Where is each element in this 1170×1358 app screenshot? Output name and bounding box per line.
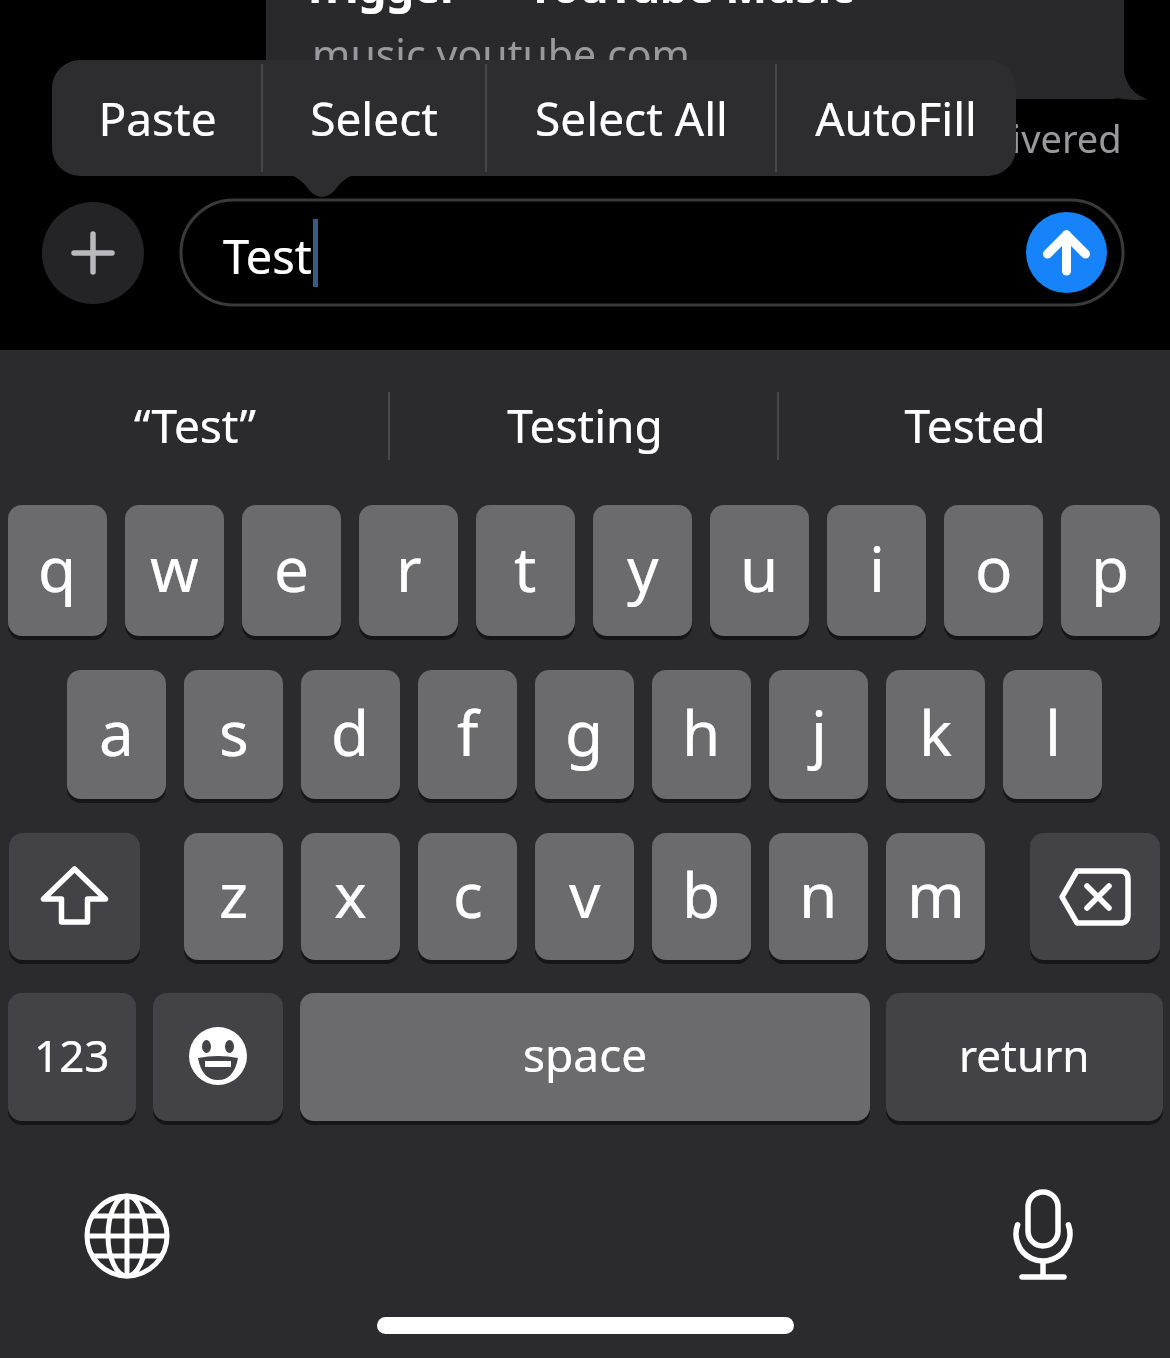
- button[interactable]: Select All: [486, 60, 776, 176]
- staticText: s: [219, 690, 249, 774]
- staticText: Paste: [98, 87, 217, 150]
- staticText: Tested: [904, 394, 1046, 457]
- staticText: w: [150, 526, 199, 610]
- button[interactable]: z: [184, 833, 283, 961]
- button[interactable]: AutoFill: [776, 60, 1016, 176]
- button[interactable]: “Test”: [40, 389, 350, 461]
- button[interactable]: v: [535, 833, 634, 961]
- staticText: d: [331, 690, 370, 774]
- staticText: Test: [223, 224, 312, 288]
- button[interactable]: o: [944, 505, 1043, 637]
- button[interactable]: j: [769, 670, 868, 800]
- button[interactable]: [1030, 833, 1160, 961]
- button[interactable]: d: [301, 670, 400, 800]
- button[interactable]: t: [476, 505, 575, 637]
- button[interactable]: Paste: [52, 60, 262, 176]
- button[interactable]: [77, 1186, 177, 1286]
- staticText: v: [569, 852, 601, 936]
- button[interactable]: [153, 993, 283, 1122]
- button[interactable]: Select: [262, 60, 486, 176]
- button[interactable]: a: [67, 670, 166, 800]
- button[interactable]: c: [418, 833, 517, 961]
- staticText: k: [919, 690, 953, 774]
- button[interactable]: p: [1061, 505, 1160, 637]
- staticText: Select All: [535, 87, 728, 150]
- staticText: t: [514, 526, 537, 610]
- staticText: h: [682, 690, 721, 774]
- button[interactable]: n: [769, 833, 868, 961]
- button[interactable]: h: [652, 670, 751, 800]
- staticText: Delivered: [952, 112, 1122, 158]
- staticText: space: [523, 1023, 648, 1086]
- button[interactable]: e: [242, 505, 341, 637]
- button[interactable]: w: [125, 505, 224, 637]
- staticText: e: [274, 526, 309, 610]
- button[interactable]: s: [184, 670, 283, 800]
- button[interactable]: Testing: [430, 389, 740, 461]
- staticText: x: [334, 852, 367, 936]
- staticText: b: [682, 852, 721, 936]
- staticText: Select: [310, 87, 438, 150]
- button[interactable]: space: [300, 993, 870, 1122]
- button[interactable]: b: [652, 833, 751, 961]
- staticText: n: [799, 852, 838, 936]
- button[interactable]: Tested: [820, 389, 1130, 461]
- staticText: AutoFill: [815, 87, 977, 150]
- staticText: g: [565, 690, 604, 774]
- staticText: r: [396, 526, 422, 610]
- staticText: m: [907, 852, 965, 936]
- button[interactable]: Test: [181, 200, 1123, 305]
- button[interactable]: [9, 833, 140, 961]
- staticText: “Test”: [134, 394, 256, 457]
- button[interactable]: [42, 202, 144, 304]
- button[interactable]: return: [886, 993, 1163, 1122]
- button[interactable]: m: [886, 833, 985, 961]
- button[interactable]: g: [535, 670, 634, 800]
- staticText: return: [959, 1025, 1090, 1085]
- button[interactable]: [1026, 212, 1107, 293]
- staticText: c: [453, 852, 483, 936]
- staticText: l: [1045, 690, 1061, 774]
- button[interactable]: i: [827, 505, 926, 637]
- staticText: a: [99, 690, 134, 774]
- button[interactable]: y: [593, 505, 692, 637]
- staticText: f: [457, 690, 479, 774]
- staticText: j: [811, 690, 827, 774]
- button[interactable]: u: [710, 505, 809, 637]
- staticText: Trigger — YouTube Music: [302, 0, 854, 14]
- staticText: o: [975, 526, 1013, 610]
- staticText: Testing: [507, 394, 663, 457]
- staticText: music.youtube.com: [312, 26, 690, 78]
- button[interactable]: k: [886, 670, 985, 800]
- button[interactable]: q: [8, 505, 107, 637]
- button[interactable]: f: [418, 670, 517, 800]
- staticText: z: [219, 852, 249, 936]
- staticText: i: [869, 526, 885, 610]
- staticText: q: [38, 526, 77, 610]
- button[interactable]: l: [1003, 670, 1102, 800]
- button[interactable]: x: [301, 833, 400, 961]
- staticText: 123: [34, 1025, 110, 1085]
- staticText: u: [740, 526, 779, 610]
- button[interactable]: [992, 1182, 1092, 1282]
- staticText: p: [1091, 526, 1130, 610]
- button[interactable]: 123: [8, 993, 136, 1122]
- button[interactable]: r: [359, 505, 458, 637]
- staticText: y: [627, 526, 659, 610]
